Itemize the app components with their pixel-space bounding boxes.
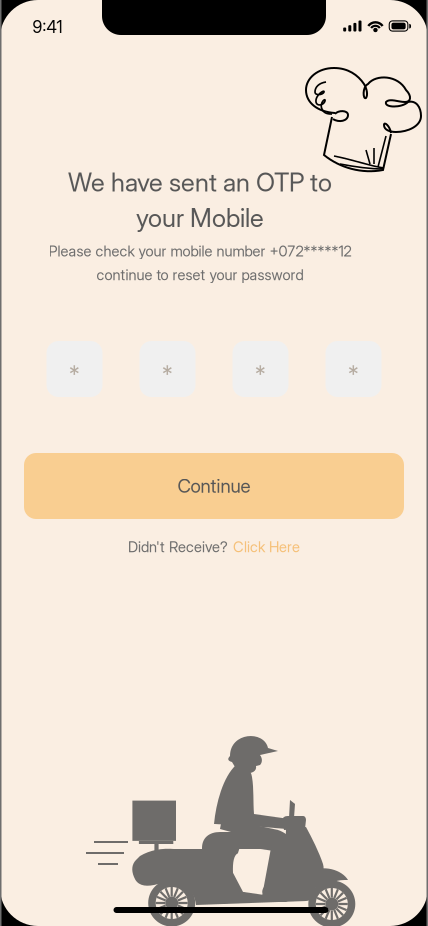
button[interactable]: Continue [24, 453, 404, 519]
staticText: We have sent an OTP to [68, 167, 332, 197]
staticText: * [162, 360, 173, 388]
staticText: Please check your mobile number +072****… [48, 242, 351, 260]
button[interactable]: Didn't Receive? [128, 538, 300, 556]
staticText: continue to reset your password [96, 266, 303, 284]
staticText: * [69, 360, 80, 388]
button[interactable]: * [46, 341, 102, 397]
staticText: your Mobile [136, 202, 264, 233]
staticText: Continue [177, 475, 250, 497]
staticText: 9:41 [32, 17, 62, 37]
button[interactable]: * [139, 341, 195, 397]
staticText: * [255, 360, 266, 388]
button[interactable]: * [232, 341, 288, 397]
button[interactable]: * [325, 341, 381, 397]
staticText: Didn't Receive? [128, 538, 228, 556]
staticText: * [348, 360, 359, 388]
staticText: Click Here [233, 538, 300, 556]
